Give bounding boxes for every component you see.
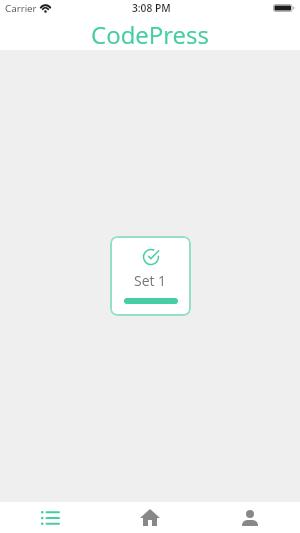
button[interactable]: Home [100,502,200,533]
button[interactable]: Lessons list [0,502,100,533]
staticText: CodePress [91,18,209,51]
button[interactable]: Set 1 [110,236,191,316]
staticText: Carrier [5,2,37,15]
staticText: 3:08 PM [132,1,171,15]
staticText: Set 1 [134,271,167,290]
button[interactable]: Profile [200,502,300,533]
